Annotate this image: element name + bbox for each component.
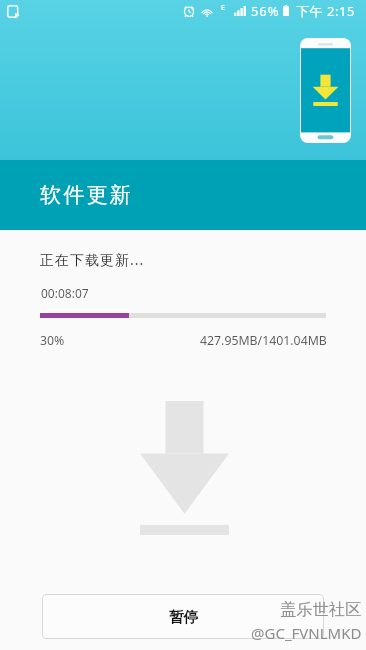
staticText: 30% [40,332,65,349]
button[interactable]: 暂停 [42,594,324,639]
staticText: 软件更新 [40,182,133,208]
staticText: 盖乐世社区 [280,599,362,620]
staticText: 正在下载更新... [40,250,145,269]
staticText: 56% [251,2,280,20]
staticText: 427.95MB/1401.04MB [200,332,327,349]
staticText: 下午 2:15 [296,2,356,20]
other: Screenshot saved [7,5,20,18]
staticText: E [221,3,225,13]
staticText: 00:08:07 [41,285,89,301]
staticText: 暂停 [169,608,198,626]
staticText: @GC_FVNLMKD [251,623,362,643]
